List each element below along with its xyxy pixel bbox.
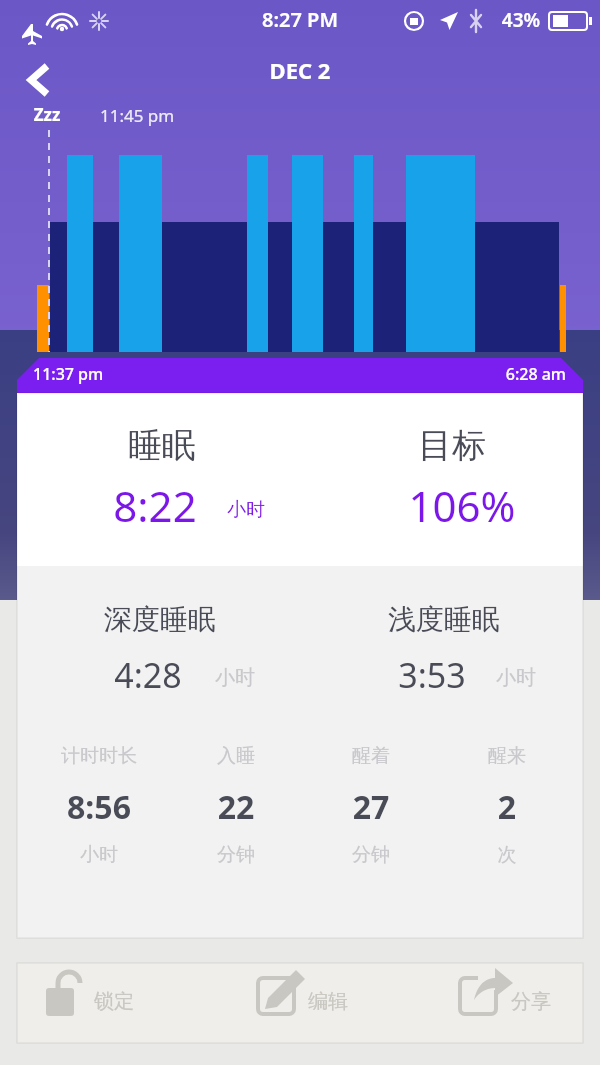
staticText: 分享 — [331, 989, 600, 1021]
staticText: 醒来 — [307, 744, 600, 774]
staticText: 分钟 — [171, 843, 571, 873]
staticText: 8:27 PM — [100, 6, 500, 38]
button[interactable] — [206, 963, 395, 1043]
staticText: 深度睡眠 — [0, 602, 360, 647]
staticText: 11:37 pm — [33, 363, 433, 389]
staticText: DEC 2 — [100, 55, 500, 90]
staticText: 醒着 — [171, 744, 571, 774]
staticText: 22 — [36, 785, 436, 836]
staticText: 小时 — [316, 665, 600, 697]
staticText: 小时 — [46, 498, 446, 528]
staticText: 11:45 pm — [100, 104, 500, 131]
staticText: 2 — [307, 785, 600, 836]
button[interactable] — [395, 963, 583, 1043]
staticText: 27 — [171, 785, 571, 836]
staticText: 浅度睡眠 — [244, 602, 600, 647]
staticText: 8:22 — [0, 477, 355, 544]
staticText: 睡眠 — [0, 424, 362, 478]
staticText: 4:28 — [0, 652, 348, 706]
staticText: 小时 — [35, 665, 435, 697]
staticText: 3:53 — [232, 652, 600, 706]
staticText: 106% — [262, 477, 600, 544]
staticText: 目标 — [252, 424, 600, 478]
staticText: 小时 — [0, 843, 299, 873]
staticText: 计时时长 — [0, 744, 299, 774]
staticText: 锁定 — [0, 989, 314, 1021]
staticText: 分钟 — [36, 843, 436, 873]
staticText: 6:28 am — [166, 363, 566, 389]
staticText: Zzz — [0, 103, 247, 130]
button[interactable] — [17, 963, 206, 1043]
staticText: 43% — [321, 7, 600, 37]
staticText: 8:56 — [0, 785, 299, 836]
staticText: 编辑 — [128, 989, 528, 1021]
button[interactable]: Back — [16, 56, 64, 104]
staticText: 次 — [307, 843, 600, 873]
staticText: 入睡 — [36, 744, 436, 774]
